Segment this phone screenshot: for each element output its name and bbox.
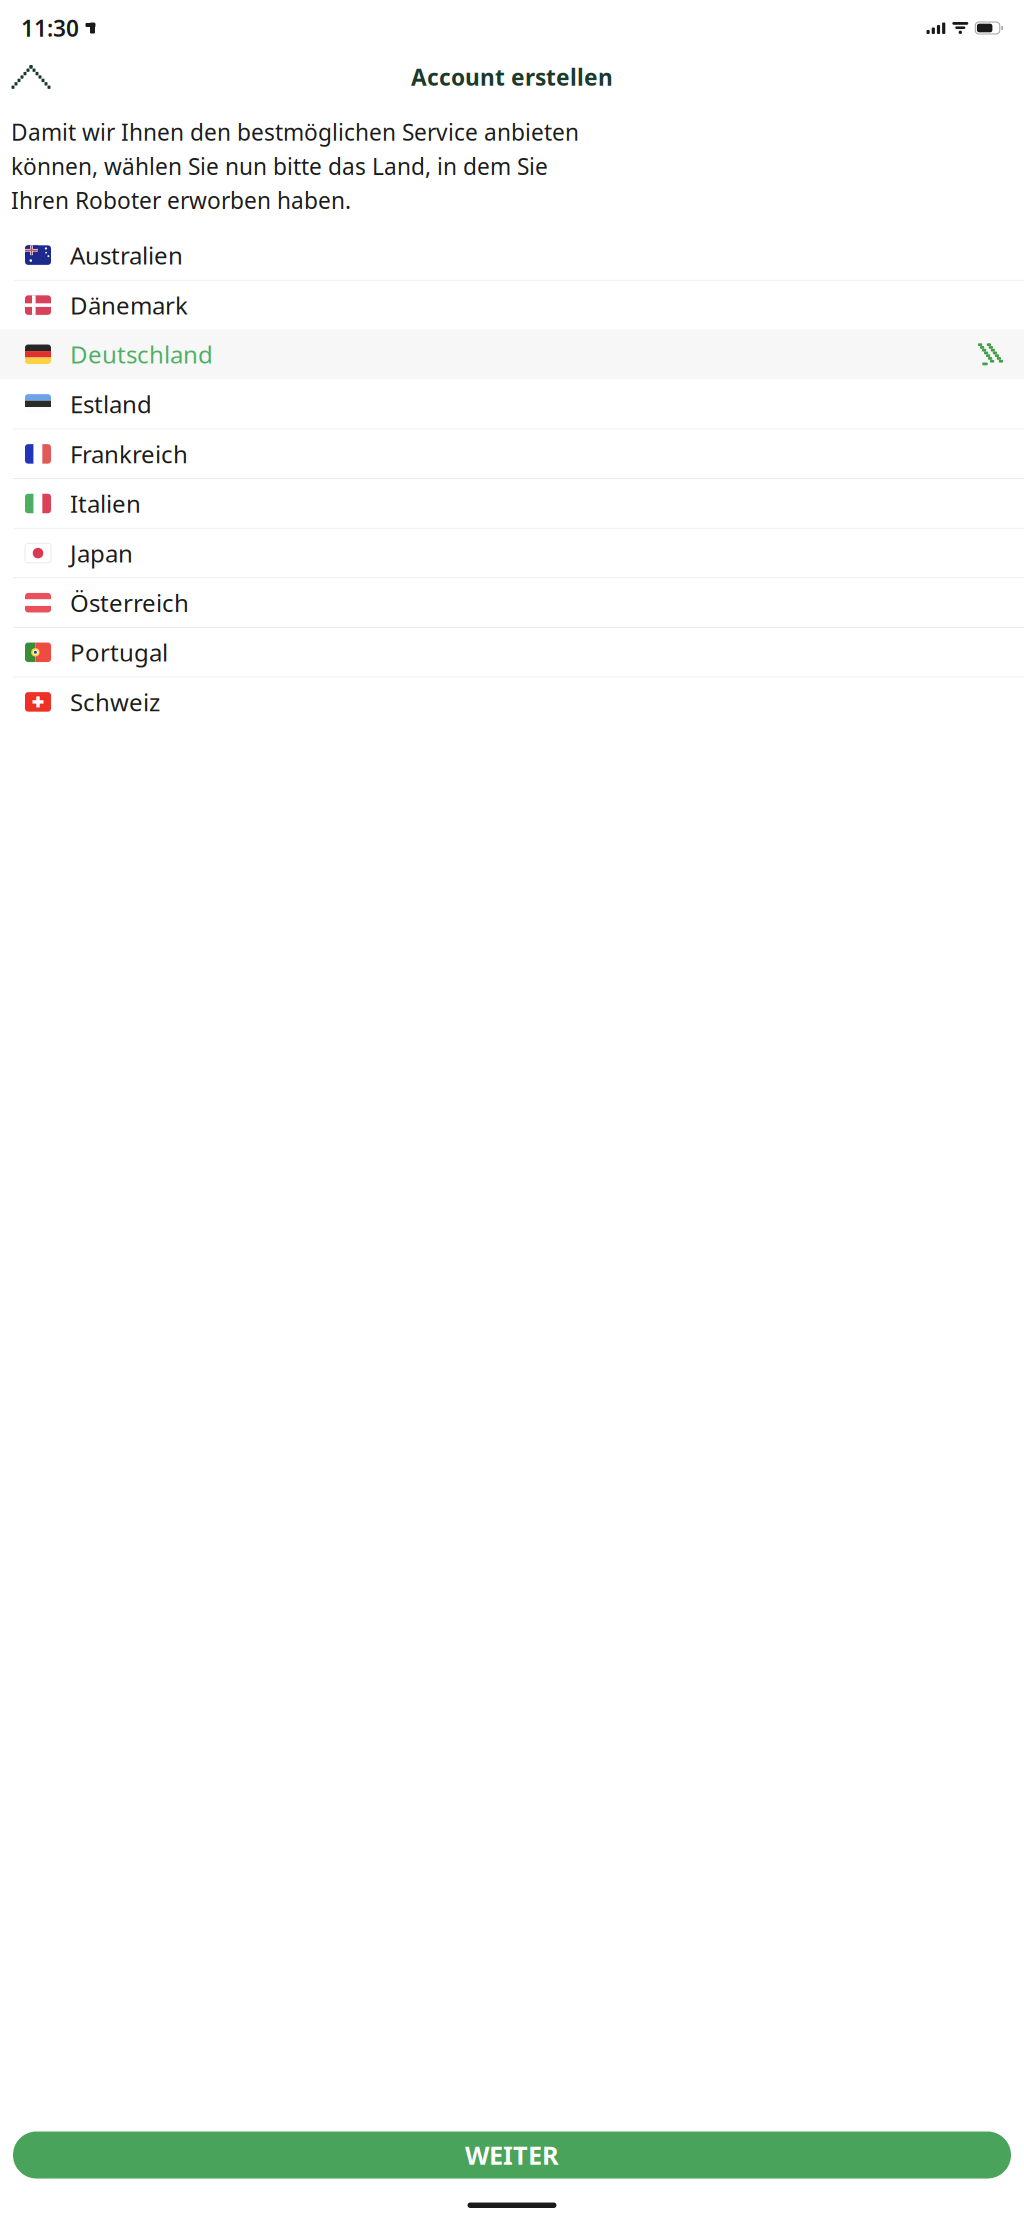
button[interactable]: Portugal <box>0 628 1024 677</box>
staticText: Estland <box>70 388 152 420</box>
staticText: Portugal <box>70 636 168 668</box>
button[interactable]: Österreich <box>0 578 1024 627</box>
button[interactable]: Italien <box>0 479 1024 528</box>
staticText: können, wählen Sie nun bitte das Land, i… <box>11 151 548 181</box>
button[interactable]: Deutschland <box>0 329 1024 379</box>
staticText: WEITER <box>465 2138 559 2172</box>
staticText: Damit wir Ihnen den bestmöglichen Servic… <box>11 117 579 147</box>
staticText: Japan <box>70 537 133 569</box>
button[interactable]: Frankreich <box>0 429 1024 478</box>
staticText: 11:30 <box>21 13 79 43</box>
staticText: Frankreich <box>70 438 188 470</box>
staticText: Dänemark <box>70 289 188 321</box>
button[interactable]: Australien <box>0 230 1024 280</box>
staticText: Account erstellen <box>411 62 613 92</box>
staticText: Deutschland <box>70 338 213 370</box>
staticText: Schweiz <box>70 686 160 718</box>
button[interactable]: Schweiz <box>0 677 1024 726</box>
button[interactable]: Schließen <box>8 54 54 100</box>
staticText: Ihren Roboter erworben haben. <box>11 185 351 215</box>
button[interactable]: WEITER <box>13 2131 1011 2178</box>
button[interactable]: Japan <box>0 529 1024 577</box>
button[interactable]: Dänemark <box>0 281 1024 329</box>
staticText: Italien <box>70 488 141 519</box>
staticText: Australien <box>70 239 183 271</box>
staticText: Österreich <box>70 587 189 619</box>
button[interactable]: Estland <box>0 379 1024 429</box>
